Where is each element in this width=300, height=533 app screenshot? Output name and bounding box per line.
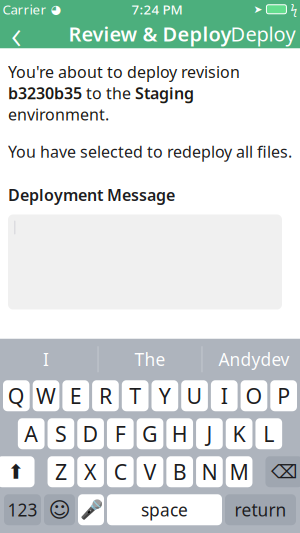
staticText: ☺ bbox=[48, 498, 70, 522]
button[interactable]: P bbox=[270, 380, 297, 411]
staticText: X bbox=[84, 458, 97, 486]
button[interactable]: C bbox=[107, 456, 134, 487]
button[interactable]: Q bbox=[3, 380, 30, 411]
button[interactable]: A bbox=[18, 418, 45, 449]
staticText: I bbox=[221, 382, 228, 410]
staticText: 7:24 PM bbox=[131, 0, 182, 18]
staticText: ⌫ bbox=[271, 461, 297, 482]
staticText: 123 bbox=[7, 498, 37, 521]
staticText: P bbox=[277, 382, 290, 410]
button[interactable]: space bbox=[107, 494, 222, 525]
staticText: S bbox=[55, 420, 67, 448]
button[interactable]: T bbox=[122, 380, 148, 411]
button[interactable]: F bbox=[107, 418, 134, 449]
button[interactable]: Dictation bbox=[78, 494, 104, 525]
button[interactable]: I bbox=[0, 341, 98, 377]
staticText: A bbox=[24, 420, 38, 448]
staticText: B bbox=[173, 458, 187, 486]
staticText: Deployment Message bbox=[8, 184, 175, 205]
staticText: R bbox=[99, 382, 112, 410]
button[interactable]: O bbox=[241, 380, 267, 411]
button[interactable]: Emoji bbox=[44, 494, 75, 525]
button[interactable]: K bbox=[226, 418, 252, 449]
staticText: J bbox=[206, 420, 212, 448]
button[interactable]: 123 bbox=[4, 494, 41, 525]
button[interactable]: Delete bbox=[265, 456, 300, 487]
button[interactable]: S bbox=[48, 418, 74, 449]
button[interactable]: L bbox=[255, 418, 282, 449]
button[interactable]: H bbox=[166, 418, 193, 449]
staticText: E bbox=[70, 382, 82, 410]
button[interactable]: Back bbox=[0, 19, 39, 48]
staticText: The bbox=[134, 348, 165, 371]
staticText: F bbox=[115, 420, 126, 448]
button[interactable]: Y bbox=[151, 380, 178, 411]
staticText: Review & Deploy bbox=[68, 20, 231, 47]
staticText: V bbox=[143, 458, 156, 486]
button[interactable]: Z bbox=[48, 456, 74, 487]
button[interactable]: B bbox=[166, 456, 193, 487]
staticText: C bbox=[114, 458, 127, 486]
staticText: M bbox=[230, 458, 249, 486]
staticText: ‹ bbox=[11, 7, 22, 60]
button[interactable]: Deploy bbox=[220, 19, 300, 48]
staticText: Carrier bbox=[3, 0, 47, 18]
staticText: T bbox=[129, 382, 141, 410]
button[interactable]: N bbox=[196, 456, 223, 487]
staticText: Y bbox=[159, 382, 171, 410]
staticText: D bbox=[83, 420, 99, 448]
staticText: G bbox=[142, 420, 158, 448]
button[interactable]: W bbox=[33, 380, 59, 411]
staticText: U bbox=[187, 382, 203, 410]
staticText: space bbox=[141, 498, 188, 521]
staticText: 🎤 bbox=[79, 499, 102, 520]
button[interactable]: The bbox=[98, 341, 201, 377]
staticText: ➤ bbox=[253, 3, 262, 15]
button[interactable]: X bbox=[77, 456, 104, 487]
staticText: O bbox=[245, 382, 262, 410]
button[interactable]: Andydev bbox=[202, 341, 300, 377]
staticText: return bbox=[234, 498, 286, 521]
button[interactable]: return bbox=[225, 494, 296, 525]
staticText: You're about to deploy revision b3230b35… bbox=[8, 61, 240, 125]
button[interactable]: R bbox=[92, 380, 119, 411]
staticText: N bbox=[201, 458, 217, 486]
staticText: H bbox=[172, 420, 188, 448]
button[interactable]: I bbox=[211, 380, 238, 411]
staticText: ⬆ bbox=[8, 460, 25, 483]
staticText: W bbox=[36, 382, 56, 410]
staticText: Z bbox=[55, 458, 67, 486]
staticText: Q bbox=[8, 382, 25, 410]
button[interactable]: J bbox=[196, 418, 223, 449]
button[interactable]: D bbox=[77, 418, 104, 449]
staticText: Andydev bbox=[218, 348, 289, 371]
staticText: ◕ bbox=[51, 2, 61, 16]
staticText: ϟ bbox=[290, 1, 297, 17]
staticText: L bbox=[263, 420, 274, 448]
button[interactable]: Shift bbox=[0, 456, 35, 487]
staticText: I bbox=[43, 348, 49, 371]
staticText: Deploy bbox=[230, 20, 295, 47]
button[interactable]: E bbox=[62, 380, 89, 411]
button[interactable]: G bbox=[137, 418, 163, 449]
button[interactable]: V bbox=[137, 456, 163, 487]
staticText: You have selected to redeploy all files. bbox=[8, 141, 292, 162]
button[interactable]: U bbox=[181, 380, 208, 411]
button[interactable]: M bbox=[226, 456, 252, 487]
staticText: K bbox=[233, 420, 246, 448]
